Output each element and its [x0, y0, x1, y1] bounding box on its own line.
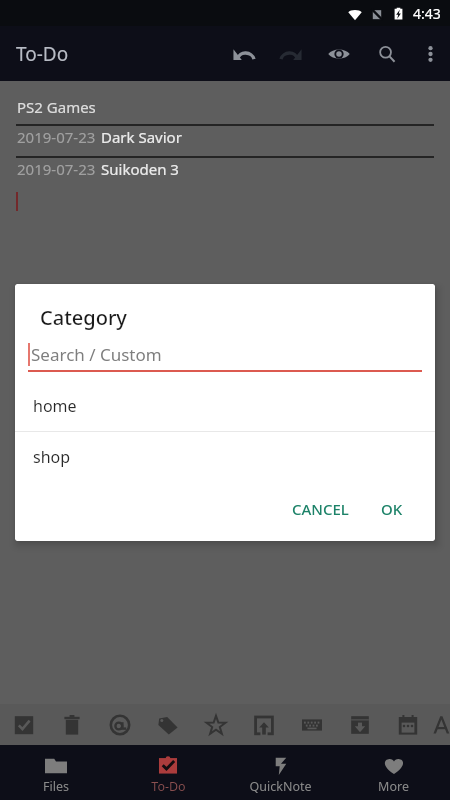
button[interactable]: Star [192, 704, 240, 745]
button[interactable]: Tag [144, 704, 192, 745]
staticText: home [33, 395, 77, 417]
staticText: 4:43 [413, 4, 441, 23]
button[interactable]: shop [15, 432, 435, 482]
button[interactable]: Mention [96, 704, 144, 745]
button[interactable]: 2019-07-23 [0, 158, 450, 188]
staticText: Files [43, 778, 69, 795]
button[interactable]: Calendar [384, 704, 432, 745]
button[interactable]: home [15, 381, 435, 431]
button[interactable]: More options [411, 30, 450, 78]
button[interactable]: Archive [336, 704, 384, 745]
button[interactable]: Text format [432, 704, 450, 745]
staticText: Suikoden 3 [101, 159, 179, 179]
button[interactable]: Check [0, 704, 48, 745]
staticText: 2019-07-23 [17, 159, 96, 179]
button[interactable]: More [337, 750, 450, 795]
staticText: QuickNote [249, 778, 312, 795]
staticText: To-Do [151, 778, 186, 795]
button[interactable]: Redo [267, 30, 315, 78]
staticText: 2019-07-23 [17, 127, 96, 147]
staticText: To-Do [16, 41, 69, 67]
button[interactable]: Share [240, 704, 288, 745]
staticText: More [378, 778, 409, 795]
staticText: shop [33, 446, 71, 468]
staticText: OK [381, 499, 403, 519]
button[interactable]: OK [371, 491, 413, 527]
staticText: CANCEL [292, 499, 349, 519]
button[interactable]: To-Do [112, 750, 224, 795]
button[interactable]: QuickNote [224, 750, 337, 795]
staticText: Dark Savior [101, 127, 182, 147]
button[interactable]: CANCEL [282, 491, 359, 527]
button[interactable]: Preview [315, 30, 363, 78]
button[interactable]: Keyboard [288, 704, 336, 745]
staticText: Search / Custom [31, 343, 162, 366]
button[interactable]: Files [0, 750, 112, 795]
staticText: PS2 Games [17, 97, 96, 117]
button[interactable]: Undo [219, 30, 267, 78]
button[interactable]: Search [363, 30, 411, 78]
staticText: Category [40, 304, 127, 331]
button[interactable]: 2019-07-23 [0, 126, 450, 156]
button[interactable]: Delete [48, 704, 96, 745]
